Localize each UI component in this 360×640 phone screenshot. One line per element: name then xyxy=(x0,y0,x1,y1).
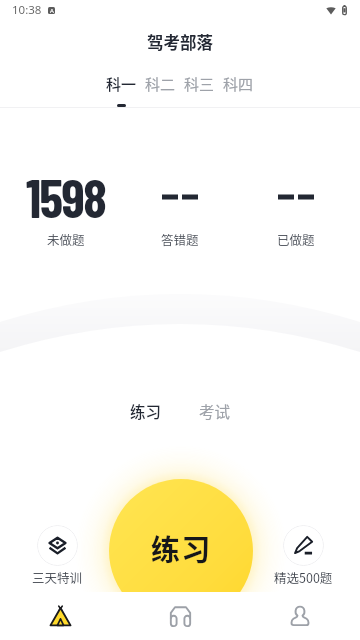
button[interactable]: 三天特训 xyxy=(7,525,107,586)
staticText: 答错题 xyxy=(161,230,199,248)
staticText: 10:38 xyxy=(12,2,42,18)
staticText: 科三 xyxy=(184,73,215,95)
staticText: 练习 xyxy=(130,400,162,422)
button[interactable]: 考试 xyxy=(189,394,241,428)
staticText: 三天特训 xyxy=(32,568,83,586)
button[interactable]: 我的 xyxy=(240,592,360,640)
button[interactable]: 听课 xyxy=(120,592,240,640)
staticText: 已做题 xyxy=(277,230,315,248)
staticText: 1598 xyxy=(26,164,106,228)
button[interactable]: 首页 xyxy=(0,592,120,640)
button[interactable]: 练习 xyxy=(109,479,253,623)
staticText: 驾考部落 xyxy=(147,30,213,54)
staticText: 考试 xyxy=(199,400,231,422)
button[interactable]: 科二 xyxy=(141,73,180,107)
staticText: 未做题 xyxy=(47,230,85,248)
staticText: 科一 xyxy=(106,73,137,95)
staticText: 科四 xyxy=(223,73,254,95)
button[interactable]: 练习 xyxy=(120,394,172,428)
button[interactable]: 科一 xyxy=(102,73,141,107)
staticText: 精选500题 xyxy=(274,568,333,586)
staticText: 练习 xyxy=(151,527,212,569)
staticText: A xyxy=(50,7,54,14)
staticText: 科二 xyxy=(145,73,176,95)
button[interactable]: 科三 xyxy=(180,73,219,107)
button[interactable]: 精选500题 xyxy=(253,525,353,586)
button[interactable]: 科四 xyxy=(219,73,258,107)
